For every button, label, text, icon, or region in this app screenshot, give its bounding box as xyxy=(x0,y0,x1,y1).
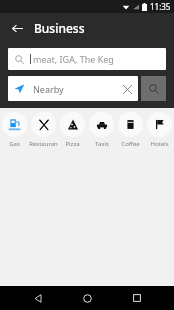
button[interactable]: Back xyxy=(6,17,28,39)
button[interactable]: Coffee xyxy=(116,112,145,148)
staticText: Taxis xyxy=(95,140,109,148)
button[interactable]: meat, IGA, The Keg xyxy=(8,48,166,70)
button[interactable]: Clear xyxy=(118,80,136,98)
button[interactable]: Gas xyxy=(0,112,29,148)
button[interactable]: Search xyxy=(141,76,166,101)
button[interactable]: Back xyxy=(26,286,50,310)
staticText: Hotels xyxy=(150,140,169,148)
staticText: Nearby xyxy=(33,83,118,95)
button[interactable]: Recent apps xyxy=(125,286,149,310)
staticText: Coffee xyxy=(121,140,140,148)
button[interactable]: Home xyxy=(75,286,99,310)
button[interactable]: Restaurants xyxy=(29,112,58,148)
staticText: Gas xyxy=(9,140,20,148)
staticText: meat, IGA, The Keg xyxy=(33,53,114,65)
button[interactable]: Hotels xyxy=(145,112,174,148)
button[interactable]: Pizza xyxy=(58,112,87,148)
staticText: Business xyxy=(34,20,85,36)
staticText: Pizza xyxy=(65,140,80,148)
button[interactable]: Nearby xyxy=(8,76,138,101)
button[interactable]: Taxis xyxy=(87,112,116,148)
staticText: 11:35 xyxy=(150,1,171,12)
staticText: Restaurants xyxy=(29,140,58,148)
